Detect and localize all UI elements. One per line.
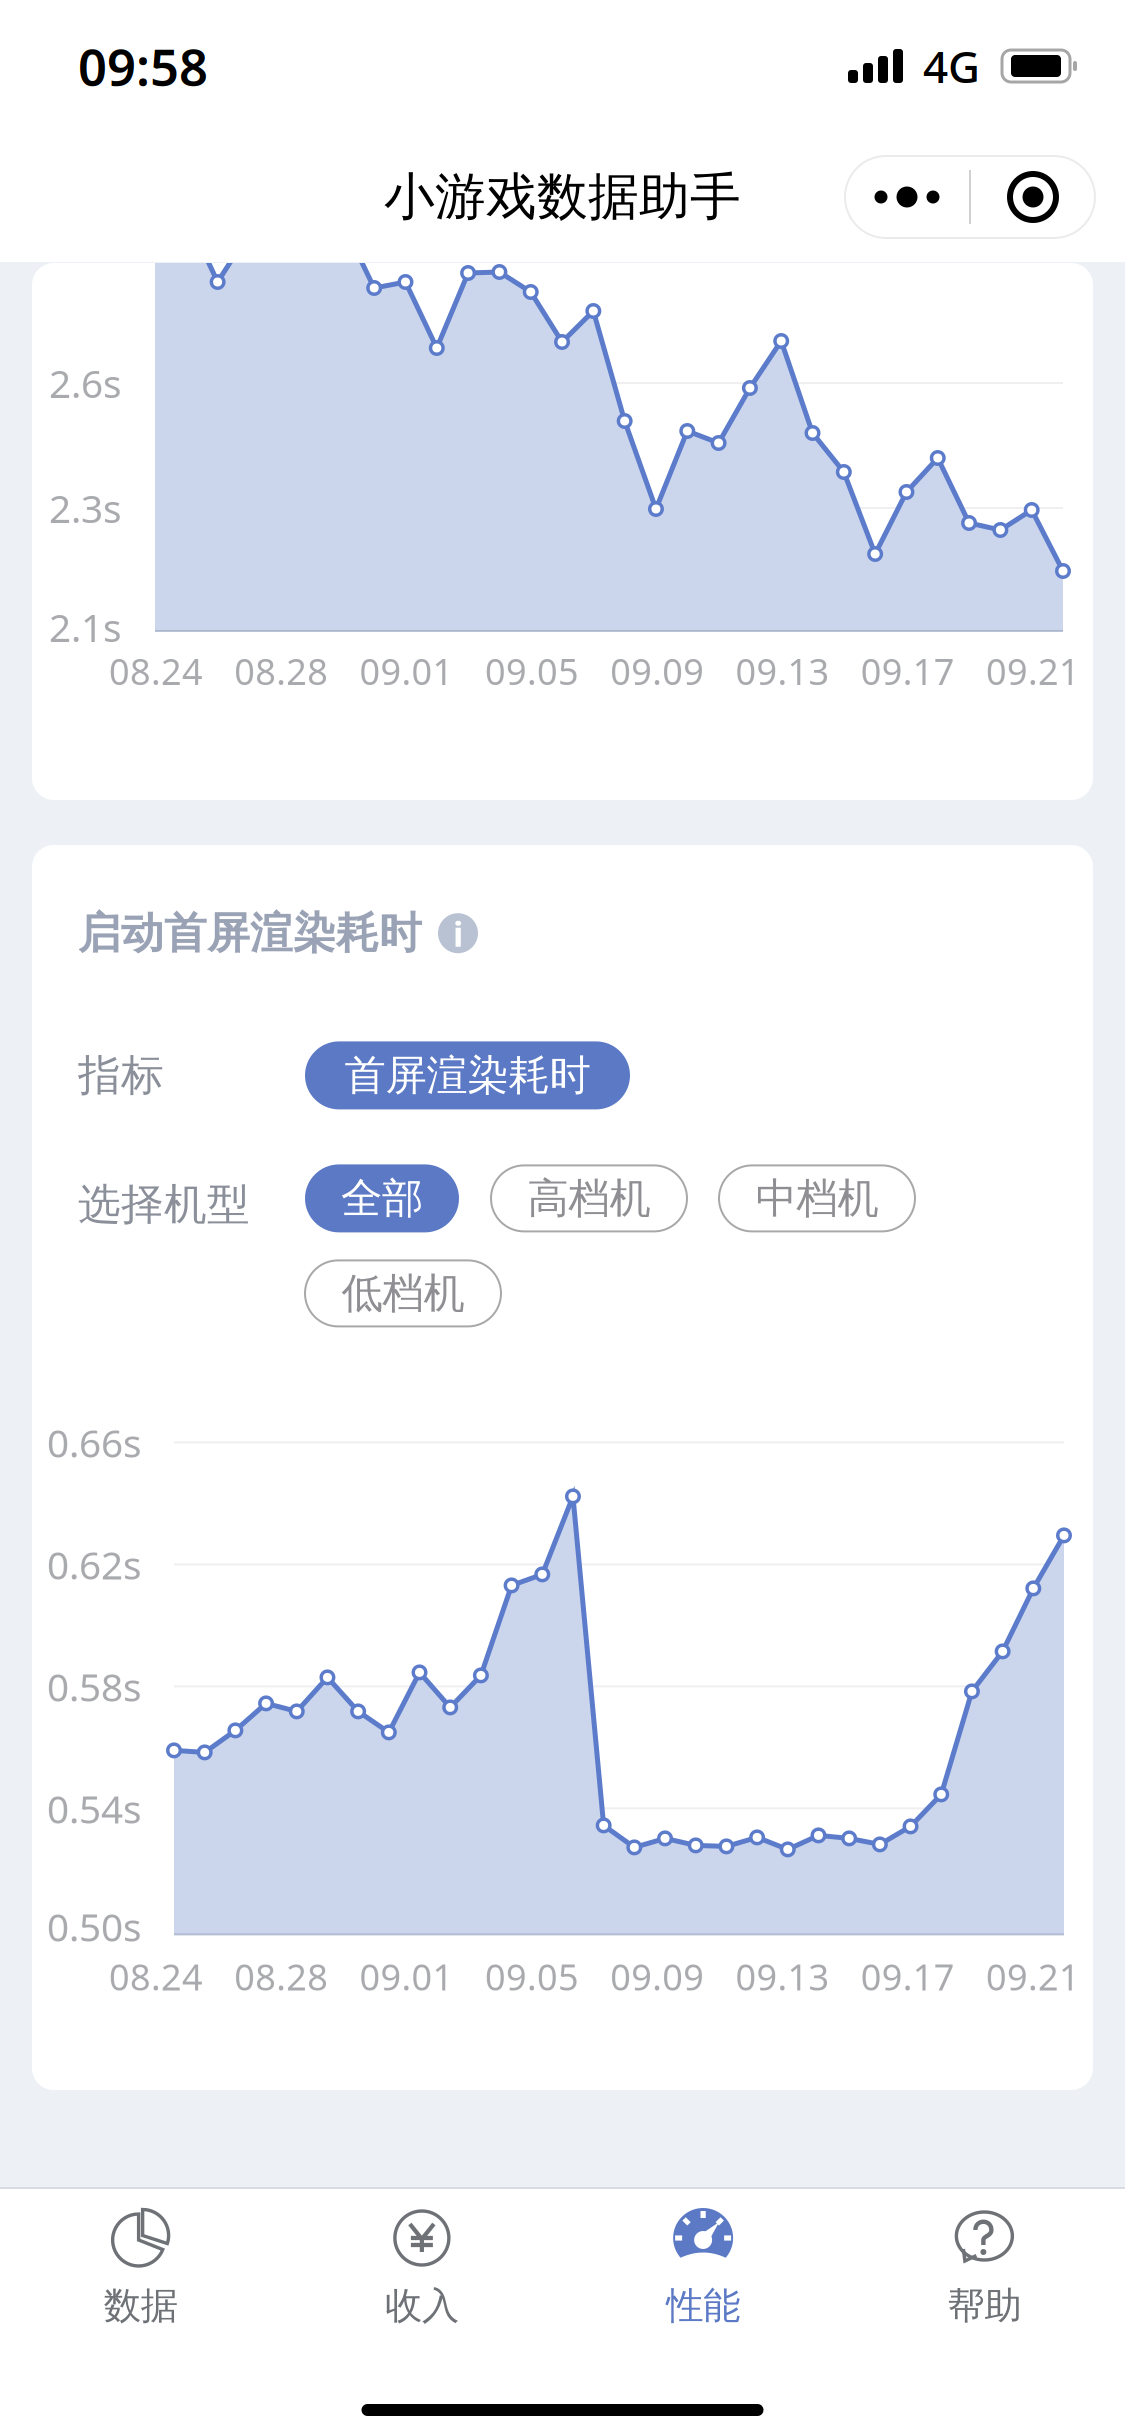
staticText: 0.66s	[47, 1417, 142, 1468]
staticText: 0.50s	[47, 1901, 142, 1952]
button[interactable]: 收入	[281, 2207, 562, 2333]
staticText: 08.28	[234, 647, 328, 695]
button[interactable]: 高档机	[491, 1165, 687, 1231]
button[interactable]: 性能	[562, 2207, 844, 2333]
staticText: 小游戏数据助手	[384, 166, 741, 228]
staticText: 低档机	[341, 1268, 464, 1319]
staticText: 中档机	[755, 1173, 878, 1224]
staticText: 09.17	[861, 647, 955, 695]
staticText: 09:58	[78, 32, 208, 100]
staticText: 2.1s	[49, 601, 122, 653]
button[interactable]: 帮助	[844, 2207, 1125, 2333]
staticText: 09.21	[986, 647, 1080, 695]
staticText: 09.13	[735, 1952, 829, 2000]
staticText: 09.05	[485, 1952, 579, 2000]
staticText: i	[453, 910, 463, 956]
staticText: 09.17	[861, 1952, 955, 2000]
button[interactable]: 全部	[305, 1164, 459, 1232]
button[interactable]: 低档机	[305, 1260, 501, 1326]
staticText: 启动首屏渲染耗时	[78, 907, 422, 959]
staticText: 08.28	[234, 1952, 328, 2000]
button[interactable]: Close mini program	[971, 156, 1095, 238]
button[interactable]: More	[845, 156, 969, 238]
staticText: 4G	[923, 37, 980, 95]
staticText: 2.6s	[49, 357, 122, 409]
staticText: 0.62s	[47, 1539, 142, 1590]
staticText: 09.09	[610, 647, 704, 695]
button[interactable]: 数据	[0, 2207, 281, 2333]
staticText: 08.24	[109, 1952, 203, 2000]
staticText: 09.09	[610, 1952, 704, 2000]
staticText: 全部	[341, 1173, 423, 1224]
staticText: 09.21	[986, 1952, 1080, 2000]
staticText: 09.01	[360, 1952, 454, 2000]
staticText: 指标	[78, 1049, 164, 1102]
button[interactable]: About this metric	[438, 913, 478, 953]
button[interactable]: 首屏渲染耗时	[305, 1041, 630, 1109]
staticText: 08.24	[109, 647, 203, 695]
staticText: 选择机型	[78, 1178, 250, 1231]
staticText: 2.3s	[49, 482, 122, 534]
staticText: 性能	[666, 2283, 740, 2329]
staticText: 帮助	[947, 2283, 1021, 2329]
staticText: 数据	[104, 2283, 178, 2329]
staticText: 0.54s	[47, 1783, 142, 1834]
staticText: 高档机	[527, 1173, 650, 1224]
staticText: 09.13	[735, 647, 829, 695]
staticText: 首屏渲染耗时	[344, 1050, 590, 1101]
staticText: 0.58s	[47, 1661, 142, 1712]
button[interactable]: 中档机	[719, 1165, 915, 1231]
staticText: 收入	[385, 2283, 459, 2329]
staticText: 09.05	[485, 647, 579, 695]
staticText: 09.01	[360, 647, 454, 695]
